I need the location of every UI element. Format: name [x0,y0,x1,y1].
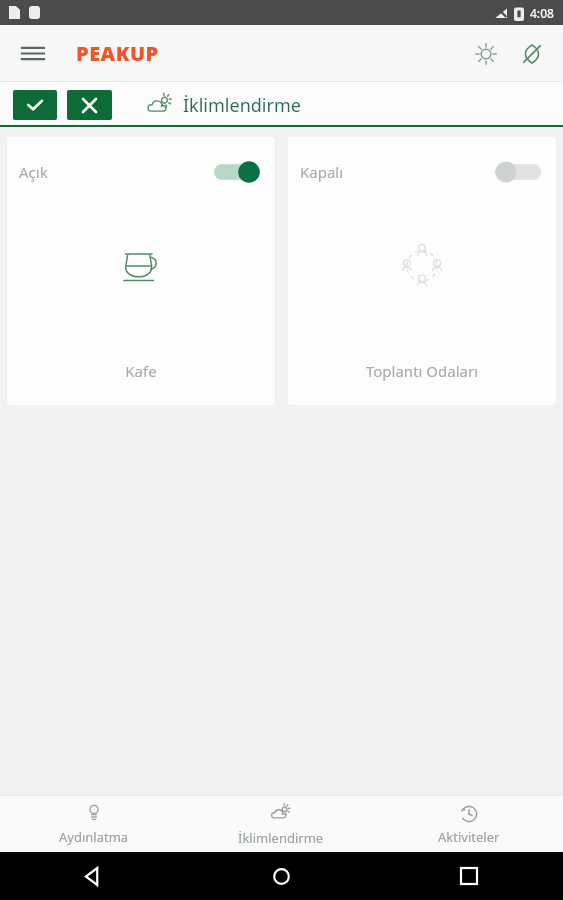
button[interactable]: Kapalı [287,136,557,406]
button[interactable]: Back [75,858,112,895]
staticText: İklimlendirme [183,93,301,118]
staticText: Aktiviteler [438,828,500,846]
staticText: Aydınlatma [59,828,129,846]
staticText: İklimlendirme [238,829,324,847]
button[interactable]: Menu [12,36,54,71]
button[interactable]: Recents [451,858,487,894]
button[interactable]: Home [263,858,300,895]
button[interactable]: Açık [6,136,276,406]
button[interactable]: İklimlendirme [187,796,375,852]
button[interactable]: Select all [13,90,57,120]
button[interactable]: Toggle [495,161,541,183]
staticText: PEAKUP [76,40,159,67]
staticText: Toplantı Odaları [287,361,557,381]
staticText: 4:08 [530,5,554,21]
button[interactable]: Toggle [214,161,260,183]
button[interactable]: Deselect all [67,90,112,120]
button[interactable]: Brightness [467,35,505,73]
staticText: Kafe [6,361,276,381]
staticText: Kapalı [300,162,344,182]
button[interactable]: Aktiviteler [375,796,563,852]
button[interactable]: Aydınlatma [0,796,187,852]
staticText: Açık [19,162,48,182]
button[interactable]: Disable [513,35,551,73]
